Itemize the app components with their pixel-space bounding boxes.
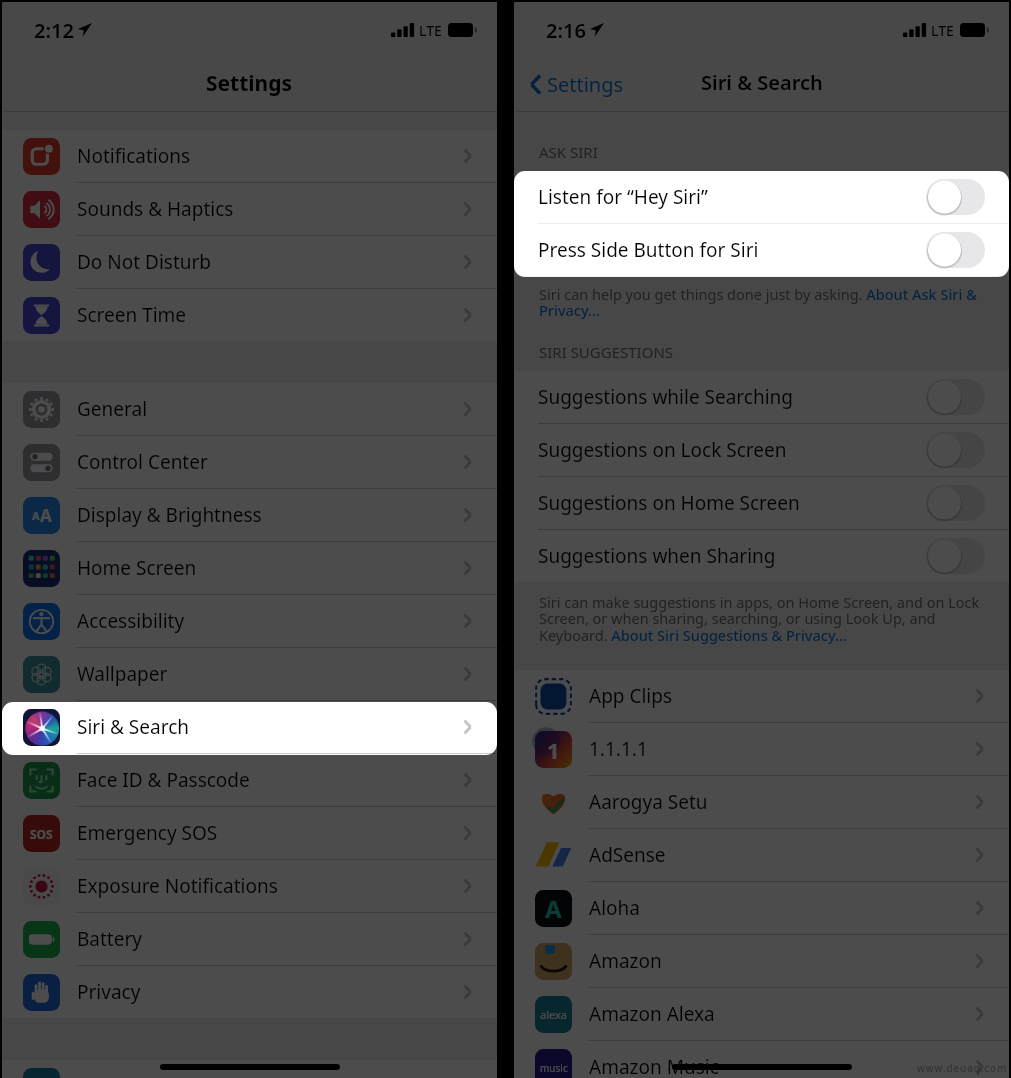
button[interactable]: Home Screen xyxy=(2,542,497,595)
staticText: Accessibility xyxy=(77,608,185,634)
staticText: Settings xyxy=(206,69,293,98)
staticText: Settings xyxy=(547,71,624,98)
staticText: Battery xyxy=(77,926,142,952)
staticText: 2:16 xyxy=(546,17,586,44)
staticText: Amazon xyxy=(589,948,662,974)
button[interactable]: Suggestions on Lock Screen xyxy=(514,424,1009,477)
staticText: SOS xyxy=(30,826,53,842)
staticText: Amazon Alexa xyxy=(589,1001,715,1027)
staticText: Display & Brightness xyxy=(77,502,262,528)
staticText: alexa xyxy=(540,1007,567,1022)
staticText: Suggestions on Lock Screen xyxy=(538,437,787,463)
staticText: A xyxy=(32,508,40,523)
button[interactable]: Face ID & Passcode xyxy=(2,754,497,807)
staticText: Siri & Search xyxy=(77,714,190,740)
button[interactable]: General xyxy=(2,383,497,436)
button[interactable]: AdSense xyxy=(514,829,1009,882)
button[interactable]: Back to Settings xyxy=(530,71,624,98)
button[interactable]: Accessibility xyxy=(2,595,497,648)
staticText: LTE xyxy=(419,21,442,40)
staticText: 1.1.1.1 xyxy=(589,736,648,762)
staticText: Home Screen xyxy=(77,555,197,581)
staticText: Suggestions while Searching xyxy=(538,384,793,410)
staticText: www.deuaq.com xyxy=(917,1061,1008,1075)
button[interactable]: Aarogya Setu xyxy=(514,776,1009,829)
staticText: Listen for “Hey Siri” xyxy=(538,184,708,210)
staticText: Aloha xyxy=(589,895,640,921)
staticText: Amazon Music xyxy=(589,1054,719,1078)
staticText: AdSense xyxy=(589,842,666,868)
staticText: Siri & Search xyxy=(701,69,823,96)
staticText: Notifications xyxy=(77,143,191,169)
button[interactable]: alexa xyxy=(514,988,1009,1041)
staticText: A xyxy=(40,504,52,527)
button[interactable]: 1 xyxy=(514,723,1009,776)
button[interactable]: Battery xyxy=(2,913,497,966)
button[interactable]: music xyxy=(514,1041,1009,1078)
staticText: Suggestions when Sharing xyxy=(538,543,776,569)
button[interactable]: Exposure Notifications xyxy=(2,860,497,913)
staticText: Siri can help you get things done just b… xyxy=(539,284,984,321)
button[interactable]: Wallpaper xyxy=(2,648,497,701)
button[interactable]: A xyxy=(514,882,1009,935)
staticText: Privacy xyxy=(77,979,141,1005)
button[interactable]: Privacy xyxy=(2,966,497,1018)
button[interactable]: Control Center xyxy=(2,436,497,489)
staticText: Wallpaper xyxy=(77,661,168,687)
staticText: LTE xyxy=(931,21,954,40)
button[interactable]: Suggestions when Sharing xyxy=(514,530,1009,582)
button[interactable]: Sounds & Haptics xyxy=(2,183,497,236)
staticText: Do Not Disturb xyxy=(77,249,212,275)
staticText: Face ID & Passcode xyxy=(77,767,250,793)
staticText: 2:12 xyxy=(34,17,74,44)
staticText: Control Center xyxy=(77,449,208,475)
staticText: ASK SIRI xyxy=(539,142,598,162)
staticText: Siri can make suggestions in apps, on Ho… xyxy=(539,592,984,646)
staticText: Aarogya Setu xyxy=(589,789,708,815)
button[interactable]: SOS xyxy=(2,807,497,860)
staticText: music xyxy=(540,1061,568,1075)
staticText: Exposure Notifications xyxy=(77,873,278,899)
staticText: SIRI SUGGESTIONS xyxy=(539,342,674,362)
button[interactable]: Do Not Disturb xyxy=(2,236,497,289)
staticText: Press Side Button for Siri xyxy=(538,237,759,263)
button[interactable]: Press Side Button for Siri xyxy=(514,224,1009,276)
button[interactable]: Screen Time xyxy=(2,289,497,341)
staticText: Emergency SOS xyxy=(77,820,218,846)
staticText: Sounds & Haptics xyxy=(77,196,234,222)
button[interactable]: Amazon xyxy=(514,935,1009,988)
staticText: Screen Time xyxy=(77,302,187,328)
staticText: A xyxy=(545,892,562,925)
staticText: 1 xyxy=(547,735,560,765)
button[interactable]: Suggestions on Home Screen xyxy=(514,477,1009,530)
button[interactable]: Suggestions while Searching xyxy=(514,371,1009,424)
staticText: Suggestions on Home Screen xyxy=(538,490,800,516)
staticText: General xyxy=(77,396,148,422)
button[interactable]: Notifications xyxy=(2,130,497,183)
staticText: App Clips xyxy=(589,683,673,709)
button[interactable]: A xyxy=(2,489,497,542)
button[interactable]: App Clips xyxy=(514,670,1009,723)
button[interactable]: Siri & Search xyxy=(2,701,497,754)
button[interactable]: Listen for “Hey Siri” xyxy=(514,171,1009,224)
button[interactable]: App Store xyxy=(2,1060,497,1078)
